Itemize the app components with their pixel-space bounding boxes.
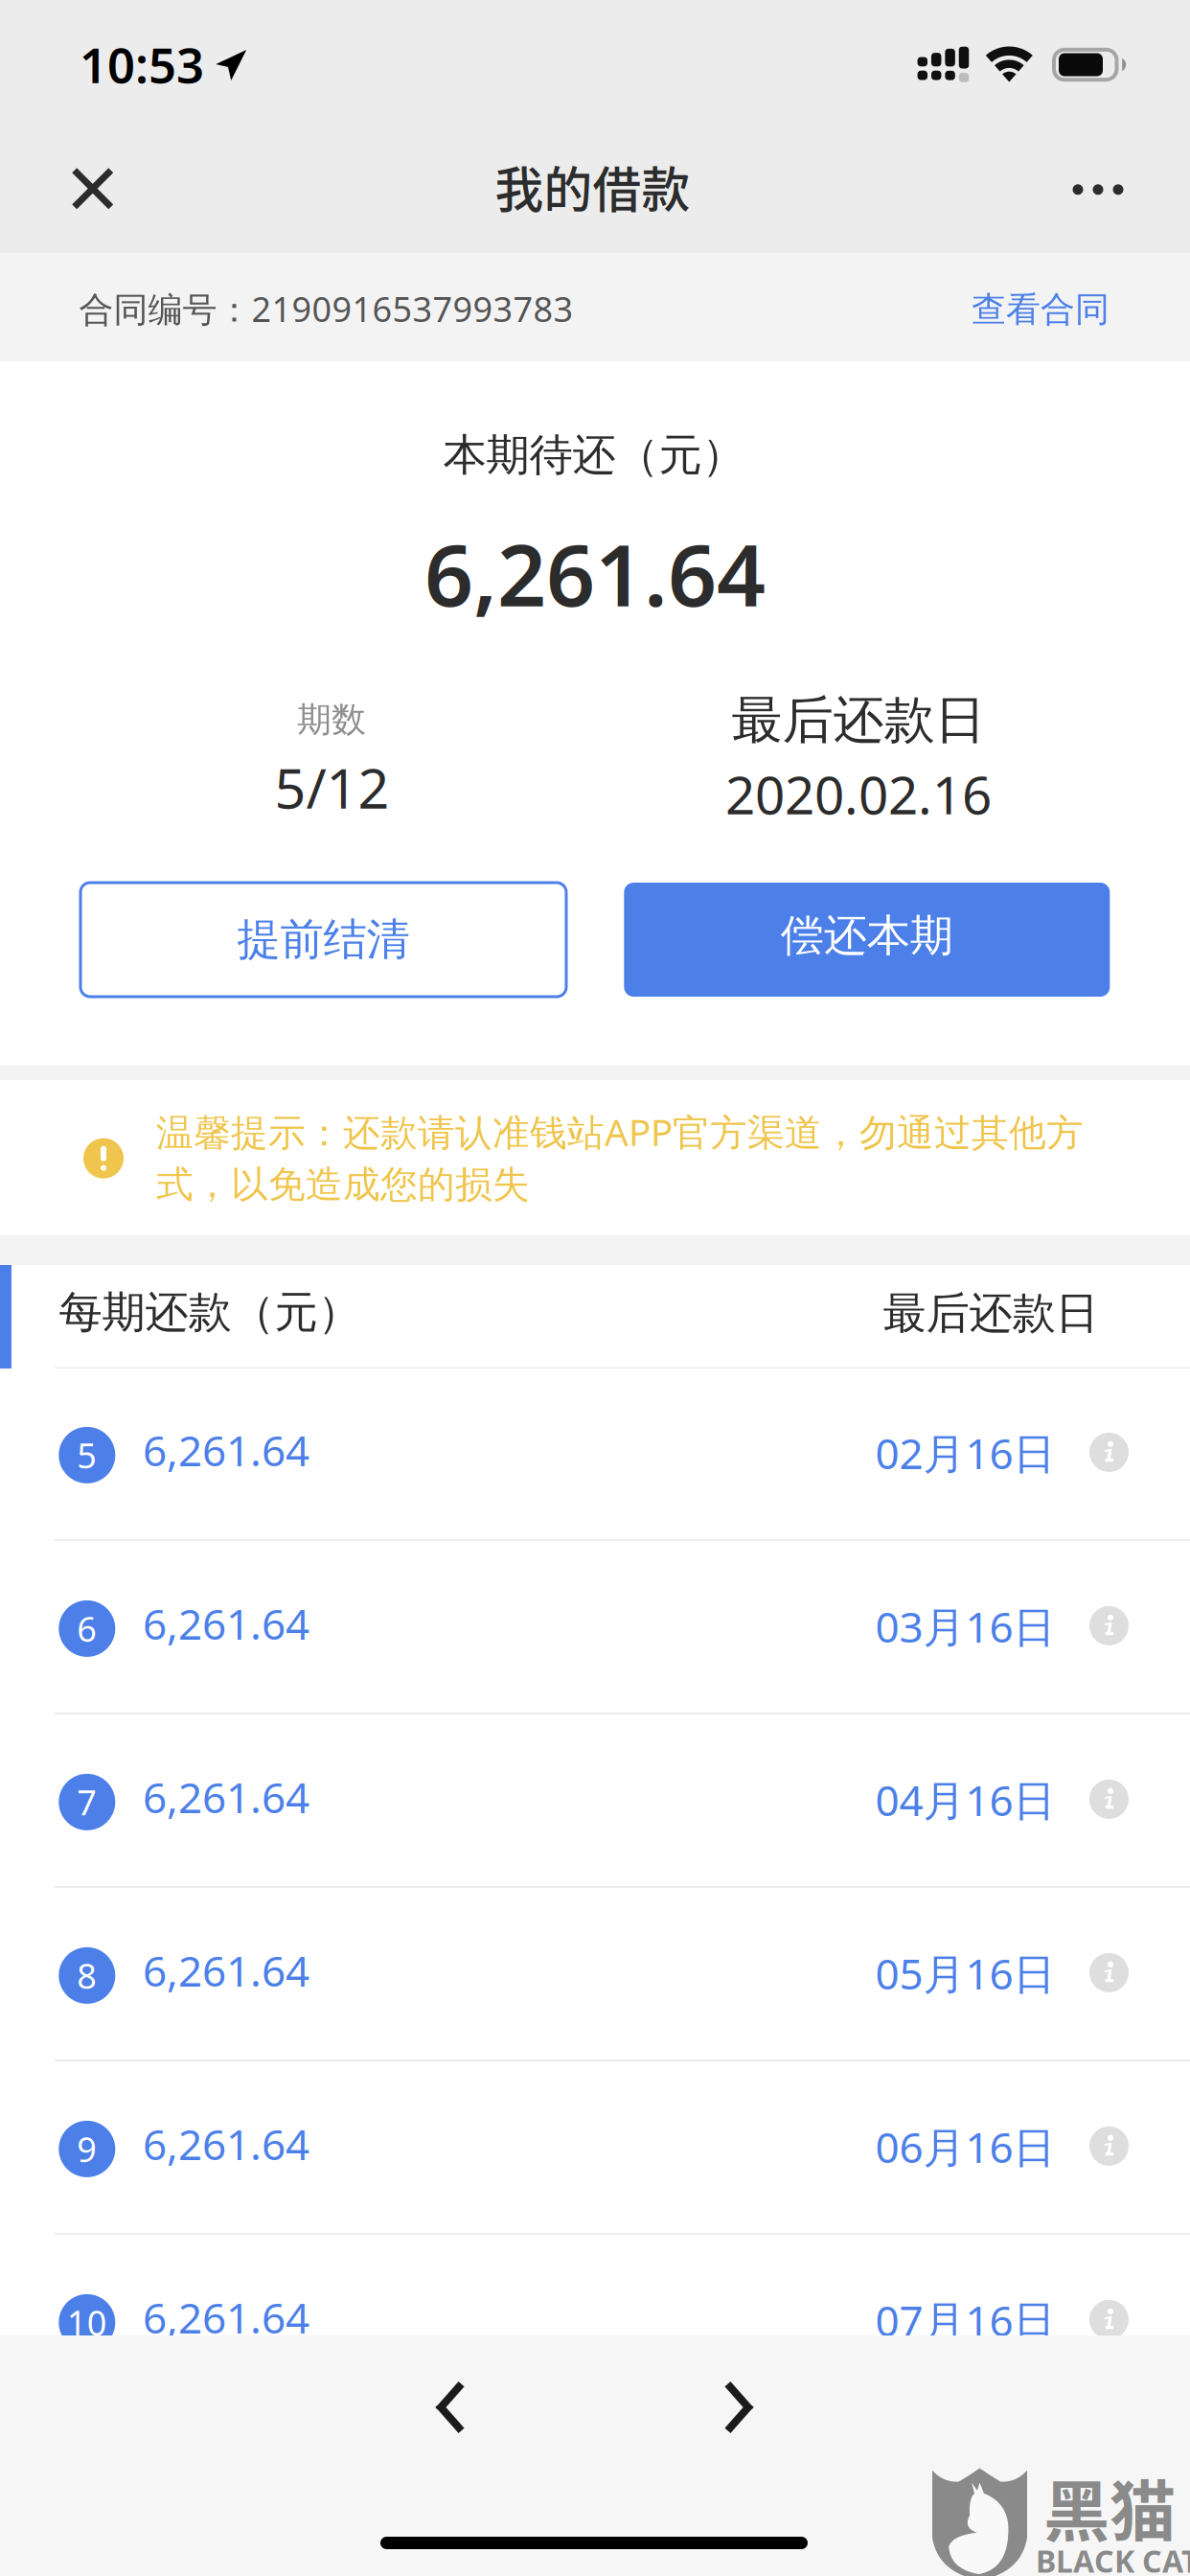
staticText: 9 bbox=[77, 2126, 97, 2172]
button[interactable]: 关闭 bbox=[30, 124, 155, 253]
button[interactable]: 查看合同 bbox=[945, 255, 1136, 364]
staticText: 最后还款日 bbox=[883, 1287, 1098, 1340]
staticText: 04月16日 bbox=[875, 1772, 1055, 1828]
staticText: 6,261.64 bbox=[143, 1942, 309, 1998]
button[interactable]: 下一页 bbox=[687, 2355, 792, 2460]
staticText: 07月16日 bbox=[875, 2292, 1055, 2348]
staticText: 黑猫 bbox=[1043, 2459, 1176, 2555]
staticText: 查看合同 bbox=[972, 288, 1110, 331]
staticText: 03月16日 bbox=[875, 1598, 1055, 1654]
staticText: 6,261.64 bbox=[143, 1595, 309, 1651]
button[interactable]: 7 bbox=[0, 1715, 1190, 1889]
staticText: 05月16日 bbox=[875, 1945, 1055, 2001]
button[interactable]: 6 bbox=[0, 1542, 1190, 1715]
staticText: 6,261.64 bbox=[143, 2289, 309, 2345]
staticText: 6,261.64 bbox=[424, 516, 766, 630]
staticText: 最后还款日 bbox=[732, 689, 985, 752]
staticText: 6,261.64 bbox=[143, 1769, 309, 1825]
staticText: BLACK CAT bbox=[1036, 2540, 1190, 2576]
button[interactable]: 上一页 bbox=[397, 2355, 503, 2460]
staticText: 10:53 bbox=[80, 32, 204, 97]
staticText: 温馨提示：还款请认准钱站APP官方渠道，勿通过其他方式，以免造成您的损失 bbox=[156, 1107, 1084, 1207]
button[interactable]: 8 bbox=[0, 1889, 1190, 2062]
staticText: 合同编号：2190916537993783 bbox=[79, 286, 573, 331]
button[interactable]: 5 bbox=[0, 1368, 1190, 1542]
staticText: 5 bbox=[77, 1432, 97, 1478]
staticText: 本期待还（元） bbox=[443, 428, 745, 482]
staticText: 02月16日 bbox=[875, 1425, 1055, 1481]
staticText: 06月16日 bbox=[875, 2119, 1055, 2175]
staticText: 我的借款 bbox=[495, 151, 690, 222]
staticText: 5/12 bbox=[275, 751, 389, 824]
staticText: 每期还款（元） bbox=[59, 1286, 361, 1339]
button[interactable]: 提前结清 bbox=[80, 883, 566, 997]
staticText: 6 bbox=[77, 1606, 97, 1651]
staticText: 2020.02.16 bbox=[725, 759, 992, 829]
staticText: 7 bbox=[77, 1779, 97, 1825]
staticText: 6,261.64 bbox=[143, 2116, 309, 2172]
button[interactable]: 偿还本期 bbox=[624, 883, 1110, 997]
button[interactable]: 更多 bbox=[1031, 125, 1165, 254]
staticText: 期数 bbox=[297, 699, 366, 741]
button[interactable]: 10 bbox=[0, 2236, 1190, 2409]
button[interactable]: 9 bbox=[0, 2062, 1190, 2236]
staticText: 提前结清 bbox=[237, 913, 410, 966]
staticText: 10 bbox=[67, 2300, 107, 2345]
staticText: 8 bbox=[77, 1953, 97, 1998]
staticText: 6,261.64 bbox=[143, 1422, 309, 1478]
staticText: 偿还本期 bbox=[781, 909, 953, 963]
